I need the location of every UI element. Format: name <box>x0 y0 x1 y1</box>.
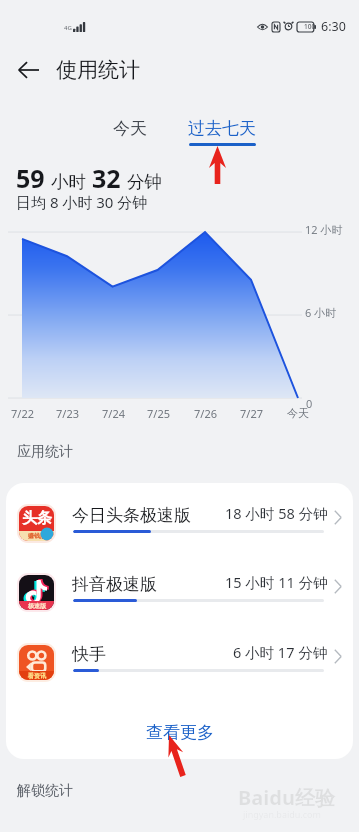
staticText: 12 小时 <box>305 222 343 237</box>
staticText: 今日头条极速版 <box>72 505 191 526</box>
staticText: 6 小时 <box>305 305 337 320</box>
staticText: 7/26 <box>194 406 217 420</box>
button[interactable]: 今天 <box>101 118 158 146</box>
button[interactable]: 查看更多 <box>6 700 353 759</box>
button[interactable]: 过去七天 <box>188 118 256 146</box>
staticText: 今天 <box>113 118 147 139</box>
button[interactable]: 极速版 <box>6 552 353 621</box>
staticText: 使用统计 <box>56 57 140 83</box>
staticText: 7/23 <box>56 406 79 420</box>
staticText: 小时 <box>51 171 86 193</box>
staticText: 过去七天 <box>188 118 256 139</box>
staticText: 100 <box>304 22 316 31</box>
staticText: 4G <box>64 24 72 32</box>
staticText: 日均 8 小时 30 分钟 <box>16 192 148 212</box>
staticText: 应用统计 <box>17 443 73 461</box>
staticText: 7/22 <box>11 406 34 420</box>
staticText: 查看更多 <box>146 722 214 743</box>
staticText: 头条 <box>22 509 52 528</box>
staticText: 看资讯 <box>28 672 46 680</box>
staticText: 今天 <box>287 406 309 420</box>
staticText: 18 小时 58 分钟 <box>225 503 328 523</box>
staticText: 0 <box>306 396 313 411</box>
staticText: 极速版 <box>28 602 46 610</box>
staticText: 赚钱版 <box>28 532 46 540</box>
staticText: 7/27 <box>240 406 263 420</box>
staticText: 抖音极速版 <box>72 574 157 595</box>
staticText: 59 <box>16 161 45 195</box>
button[interactable]: 头条 <box>6 483 353 552</box>
staticText: 15 小时 11 分钟 <box>225 572 328 592</box>
staticText: Baidu经验 <box>238 784 335 811</box>
staticText: 6:30 <box>321 18 346 35</box>
staticText: 快手 <box>72 644 106 665</box>
staticText: 解锁统计 <box>17 782 73 800</box>
button[interactable]: 看资讯 <box>6 622 353 691</box>
staticText: 32 <box>92 161 121 195</box>
staticText: 6 小时 17 分钟 <box>233 642 328 662</box>
staticText: 7/24 <box>102 406 125 420</box>
button[interactable]: Back <box>8 50 48 90</box>
staticText: 7/25 <box>147 406 170 420</box>
staticText: 分钟 <box>127 171 162 193</box>
